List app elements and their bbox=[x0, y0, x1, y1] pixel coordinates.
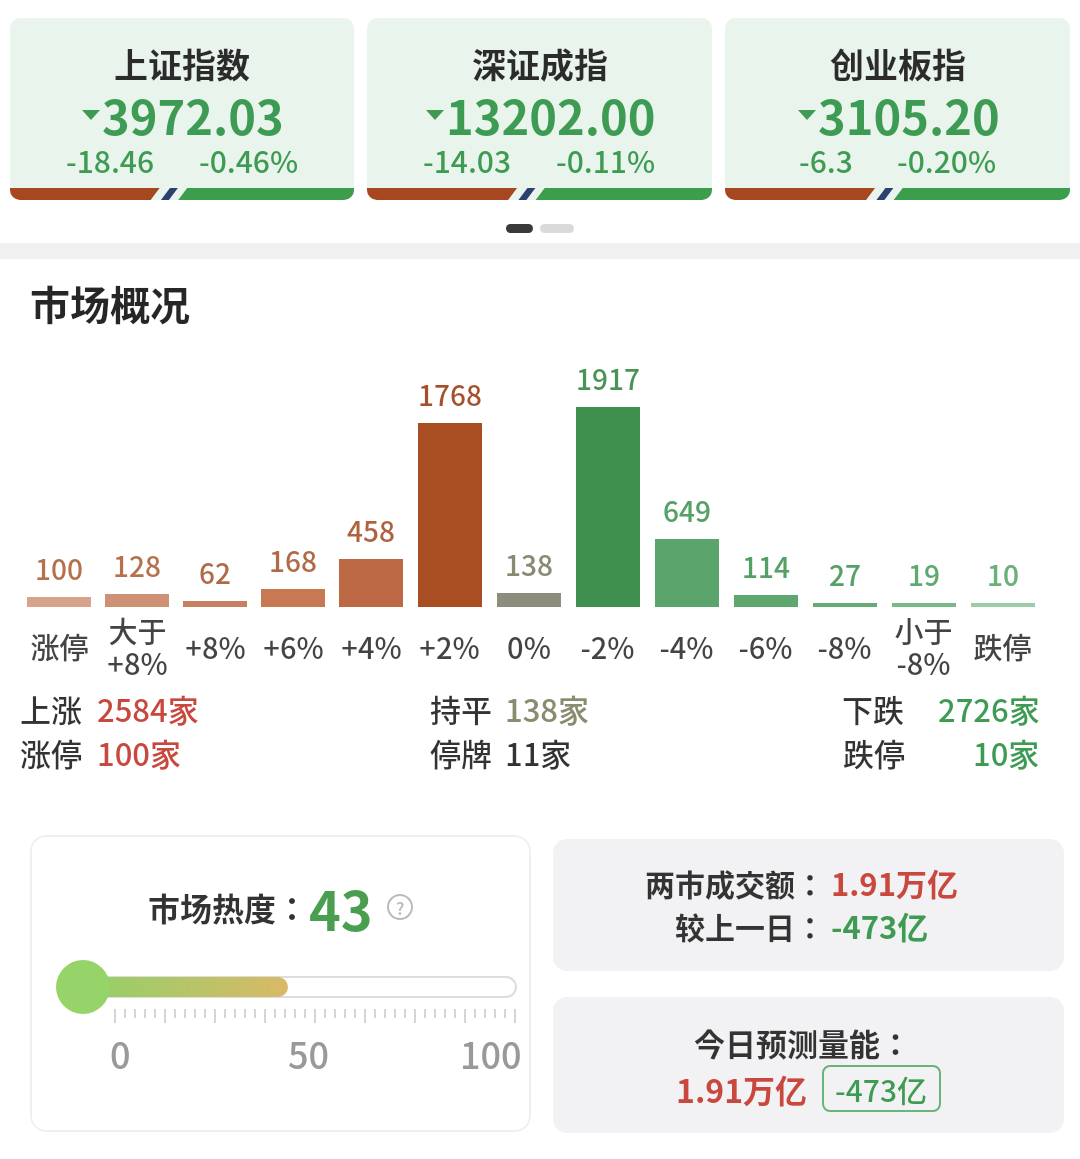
staticText: 1.91万亿 bbox=[676, 1066, 808, 1112]
button[interactable]: 深证成指 bbox=[367, 18, 712, 200]
staticText: 上证指数 bbox=[114, 39, 250, 88]
button[interactable]: 上证指数 bbox=[10, 18, 354, 200]
button[interactable]: 市场热度： bbox=[30, 835, 531, 1132]
staticText: 深证成指 bbox=[472, 39, 608, 88]
button[interactable]: 今日预测量能： bbox=[553, 997, 1064, 1133]
staticText: -14.03 bbox=[423, 138, 512, 181]
staticText: 较上一日： bbox=[675, 904, 825, 947]
staticText: ? bbox=[396, 895, 405, 920]
button[interactable]: 创业板指 bbox=[725, 18, 1070, 200]
staticText: 168 bbox=[269, 540, 317, 581]
staticText: 停牌 bbox=[430, 730, 492, 775]
staticText: 138 bbox=[505, 544, 553, 585]
staticText: 跌停 bbox=[843, 730, 905, 775]
staticText: 2584家 bbox=[97, 686, 199, 731]
staticText: -473亿 bbox=[835, 1067, 928, 1110]
button[interactable]: 两市成交额： bbox=[553, 839, 1064, 971]
staticText: 19 bbox=[908, 554, 940, 595]
staticText: -6.3 bbox=[799, 138, 853, 181]
staticText: 今日预测量能： bbox=[694, 1020, 911, 1065]
staticText: 两市成交额： bbox=[645, 861, 825, 904]
staticText: 1917 bbox=[576, 358, 640, 399]
staticText: -0.46% bbox=[199, 138, 299, 181]
staticText: 114 bbox=[742, 546, 790, 587]
staticText: 62 bbox=[199, 552, 231, 593]
staticText: 100 bbox=[460, 1027, 522, 1079]
staticText: 大于 +8% bbox=[107, 609, 168, 684]
staticText: 128 bbox=[113, 545, 161, 586]
staticText: 0 bbox=[110, 1027, 131, 1079]
staticText: 3105.20 bbox=[818, 80, 1000, 148]
staticText: 涨停 bbox=[20, 730, 82, 775]
staticText: 11家 bbox=[505, 730, 572, 775]
staticText: -0.11% bbox=[556, 138, 656, 181]
staticText: -6% bbox=[738, 625, 793, 667]
staticText: 市场概况 bbox=[30, 274, 190, 332]
staticText: 43 bbox=[309, 868, 373, 946]
staticText: -0.20% bbox=[897, 138, 997, 181]
staticText: -8% bbox=[817, 625, 872, 667]
staticText: 100家 bbox=[97, 730, 182, 775]
staticText: +6% bbox=[263, 625, 324, 667]
staticText: -2% bbox=[580, 625, 635, 667]
staticText: -18.46 bbox=[66, 138, 155, 181]
staticText: -473亿 bbox=[831, 903, 929, 948]
staticText: +4% bbox=[341, 625, 402, 667]
staticText: 跌停 bbox=[973, 625, 1032, 667]
staticText: 0% bbox=[507, 625, 551, 667]
staticText: +2% bbox=[419, 625, 480, 667]
staticText: 10家 bbox=[973, 730, 1040, 775]
staticText: -4% bbox=[659, 625, 714, 667]
staticText: 1768 bbox=[418, 374, 482, 415]
staticText: 1.91万亿 bbox=[831, 860, 958, 905]
staticText: 100 bbox=[35, 548, 83, 589]
staticText: 13202.00 bbox=[446, 80, 656, 148]
staticText: 上涨 bbox=[20, 686, 82, 731]
staticText: 2726家 bbox=[938, 686, 1040, 731]
staticText: 下跌 bbox=[842, 686, 904, 731]
staticText: 50 bbox=[288, 1027, 330, 1079]
staticText: 138家 bbox=[505, 686, 590, 731]
staticText: +8% bbox=[185, 625, 246, 667]
staticText: 小于 -8% bbox=[894, 609, 953, 684]
staticText: 458 bbox=[347, 510, 395, 551]
staticText: 27 bbox=[829, 554, 861, 595]
staticText: 涨停 bbox=[30, 625, 89, 667]
staticText: 市场热度： bbox=[148, 884, 309, 930]
staticText: 创业板指 bbox=[830, 39, 966, 88]
staticText: 3972.03 bbox=[102, 80, 284, 148]
staticText: 10 bbox=[987, 554, 1019, 595]
staticText: 649 bbox=[663, 490, 711, 531]
staticText: 持平 bbox=[430, 686, 492, 731]
